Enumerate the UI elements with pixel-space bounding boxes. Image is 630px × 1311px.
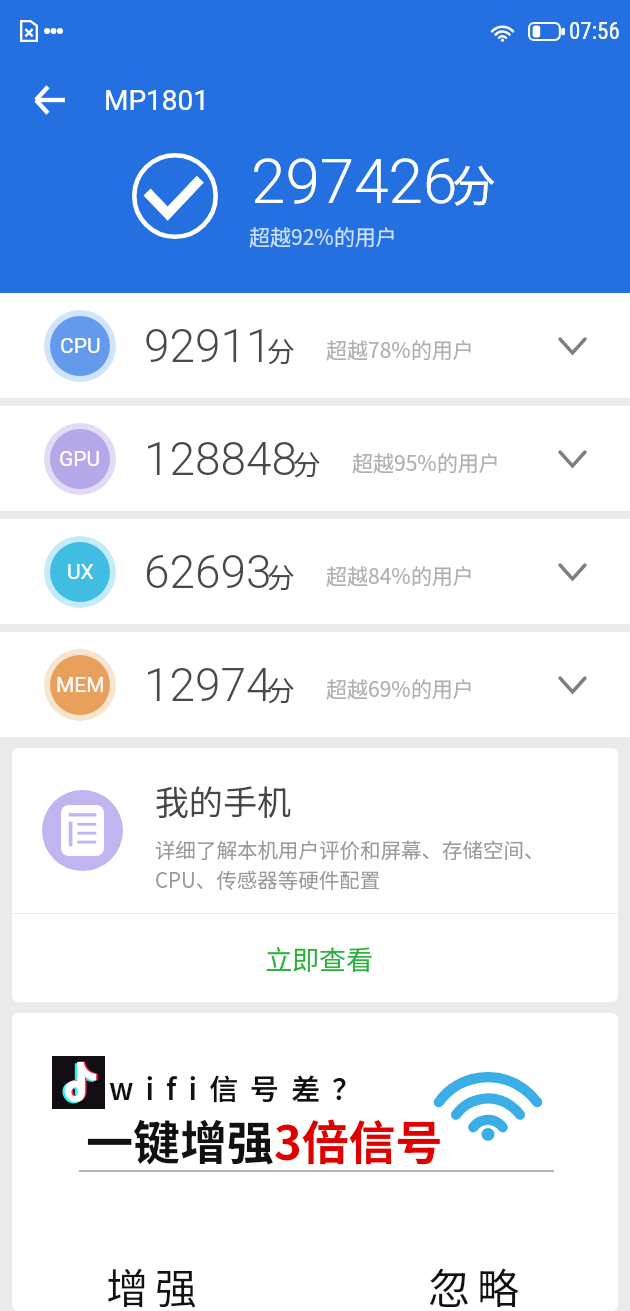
staticText: 超越78%的用户 <box>326 334 474 364</box>
staticText: wifi信号差？ <box>109 1066 374 1108</box>
staticText: 我的手机 <box>155 776 291 825</box>
staticText: 分 <box>267 330 296 371</box>
button[interactable]: Expand <box>548 322 596 370</box>
button[interactable]: Expand <box>548 661 596 709</box>
staticText: 增强 <box>106 1255 205 1311</box>
button[interactable]: GPU <box>0 406 630 511</box>
staticText: 分 <box>267 556 296 597</box>
staticText: 92911 <box>144 319 272 373</box>
staticText: 分 <box>452 151 496 215</box>
button[interactable]: 忽略 <box>315 1235 618 1311</box>
staticText: 62693 <box>144 545 272 599</box>
button[interactable]: UX <box>0 519 630 624</box>
staticText: 07:56 <box>569 18 620 45</box>
button[interactable]: MEM <box>0 632 630 737</box>
staticText: 128848 <box>144 432 298 486</box>
button[interactable]: 立即查看 <box>12 914 618 1002</box>
staticText: 超越95%的用户 <box>352 447 500 477</box>
staticText: 忽略 <box>428 1255 527 1311</box>
staticText: 297426 <box>251 145 458 218</box>
staticText: 立即查看 <box>265 939 373 978</box>
staticText: 详细了解本机用户评价和屏幕、存储空间、 CPU、传感器等硬件配置 <box>155 834 545 894</box>
staticText: GPU <box>59 447 101 472</box>
button[interactable]: Back <box>26 77 72 123</box>
button[interactable]: 增强 <box>12 1235 315 1311</box>
staticText: 分 <box>267 669 296 710</box>
staticText: 超越69%的用户 <box>326 673 474 703</box>
button[interactable]: Expand <box>548 435 596 483</box>
button[interactable]: Expand <box>548 548 596 596</box>
staticText: MP1801 <box>104 84 210 117</box>
staticText: UX <box>67 560 94 585</box>
button[interactable]: CPU <box>0 293 630 398</box>
staticText: MEM <box>56 673 105 698</box>
staticText: CPU <box>60 334 101 359</box>
staticText: 12974 <box>144 658 272 712</box>
staticText: 一键增强 <box>86 1105 274 1173</box>
staticText: 3倍信号 <box>274 1105 443 1173</box>
staticText: 分 <box>293 443 322 484</box>
staticText: 超越84%的用户 <box>326 560 474 590</box>
staticText: 超越92%的用户 <box>249 221 397 251</box>
